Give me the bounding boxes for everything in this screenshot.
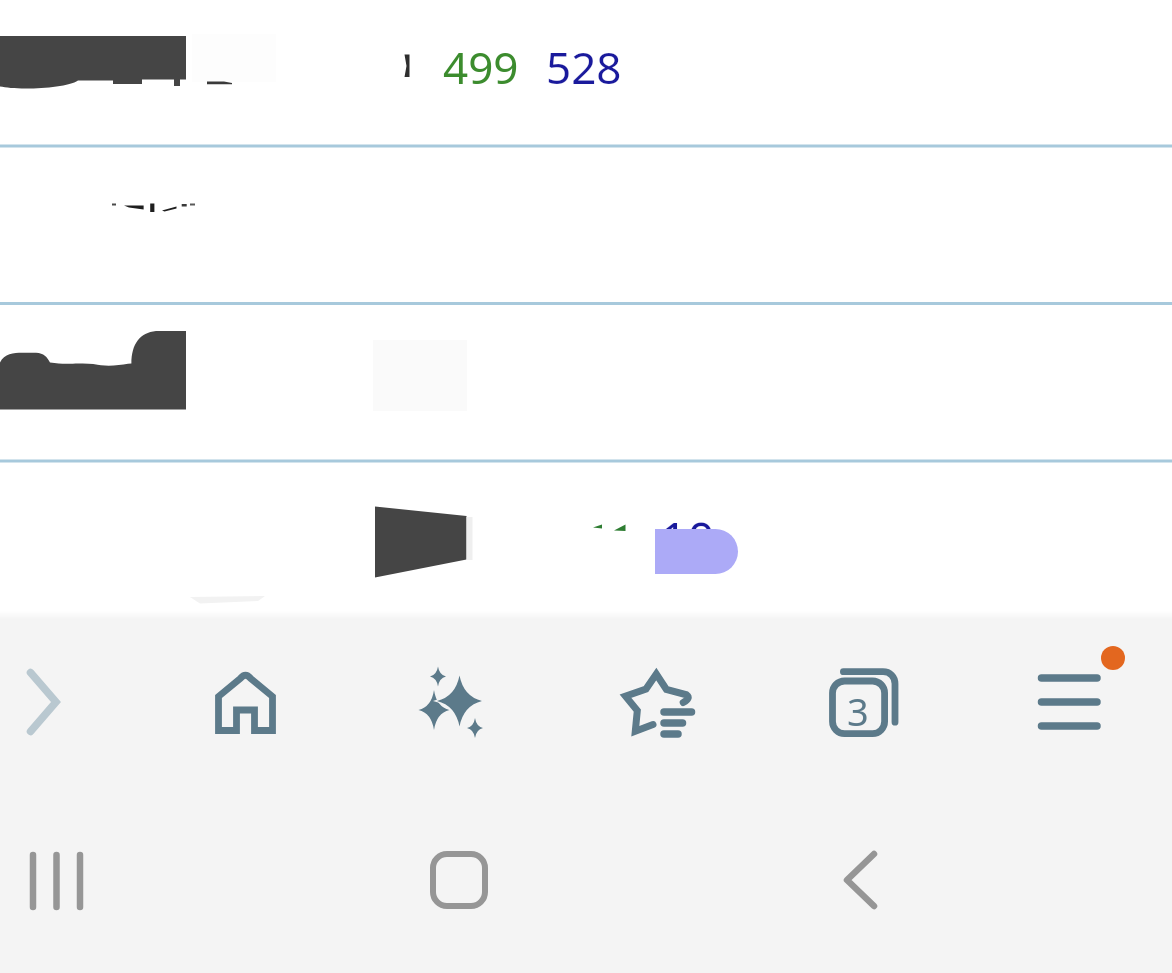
staticText: 499 [443, 37, 519, 97]
staticText: 3 [847, 685, 869, 737]
button[interactable]: Menu [966, 619, 1172, 790]
button[interactable]: Back [780, 790, 1172, 973]
button[interactable]: Home [390, 790, 780, 973]
staticText: 10 [660, 506, 715, 571]
button[interactable]: Recent apps [0, 790, 390, 973]
button[interactable]: Tabs [760, 619, 966, 790]
button[interactable]: Bookmarks [554, 619, 760, 790]
staticText: 528 [546, 37, 622, 97]
button[interactable]: Forward [0, 619, 144, 790]
button[interactable]: Assistant [348, 619, 554, 790]
button[interactable]: Home [144, 619, 348, 790]
